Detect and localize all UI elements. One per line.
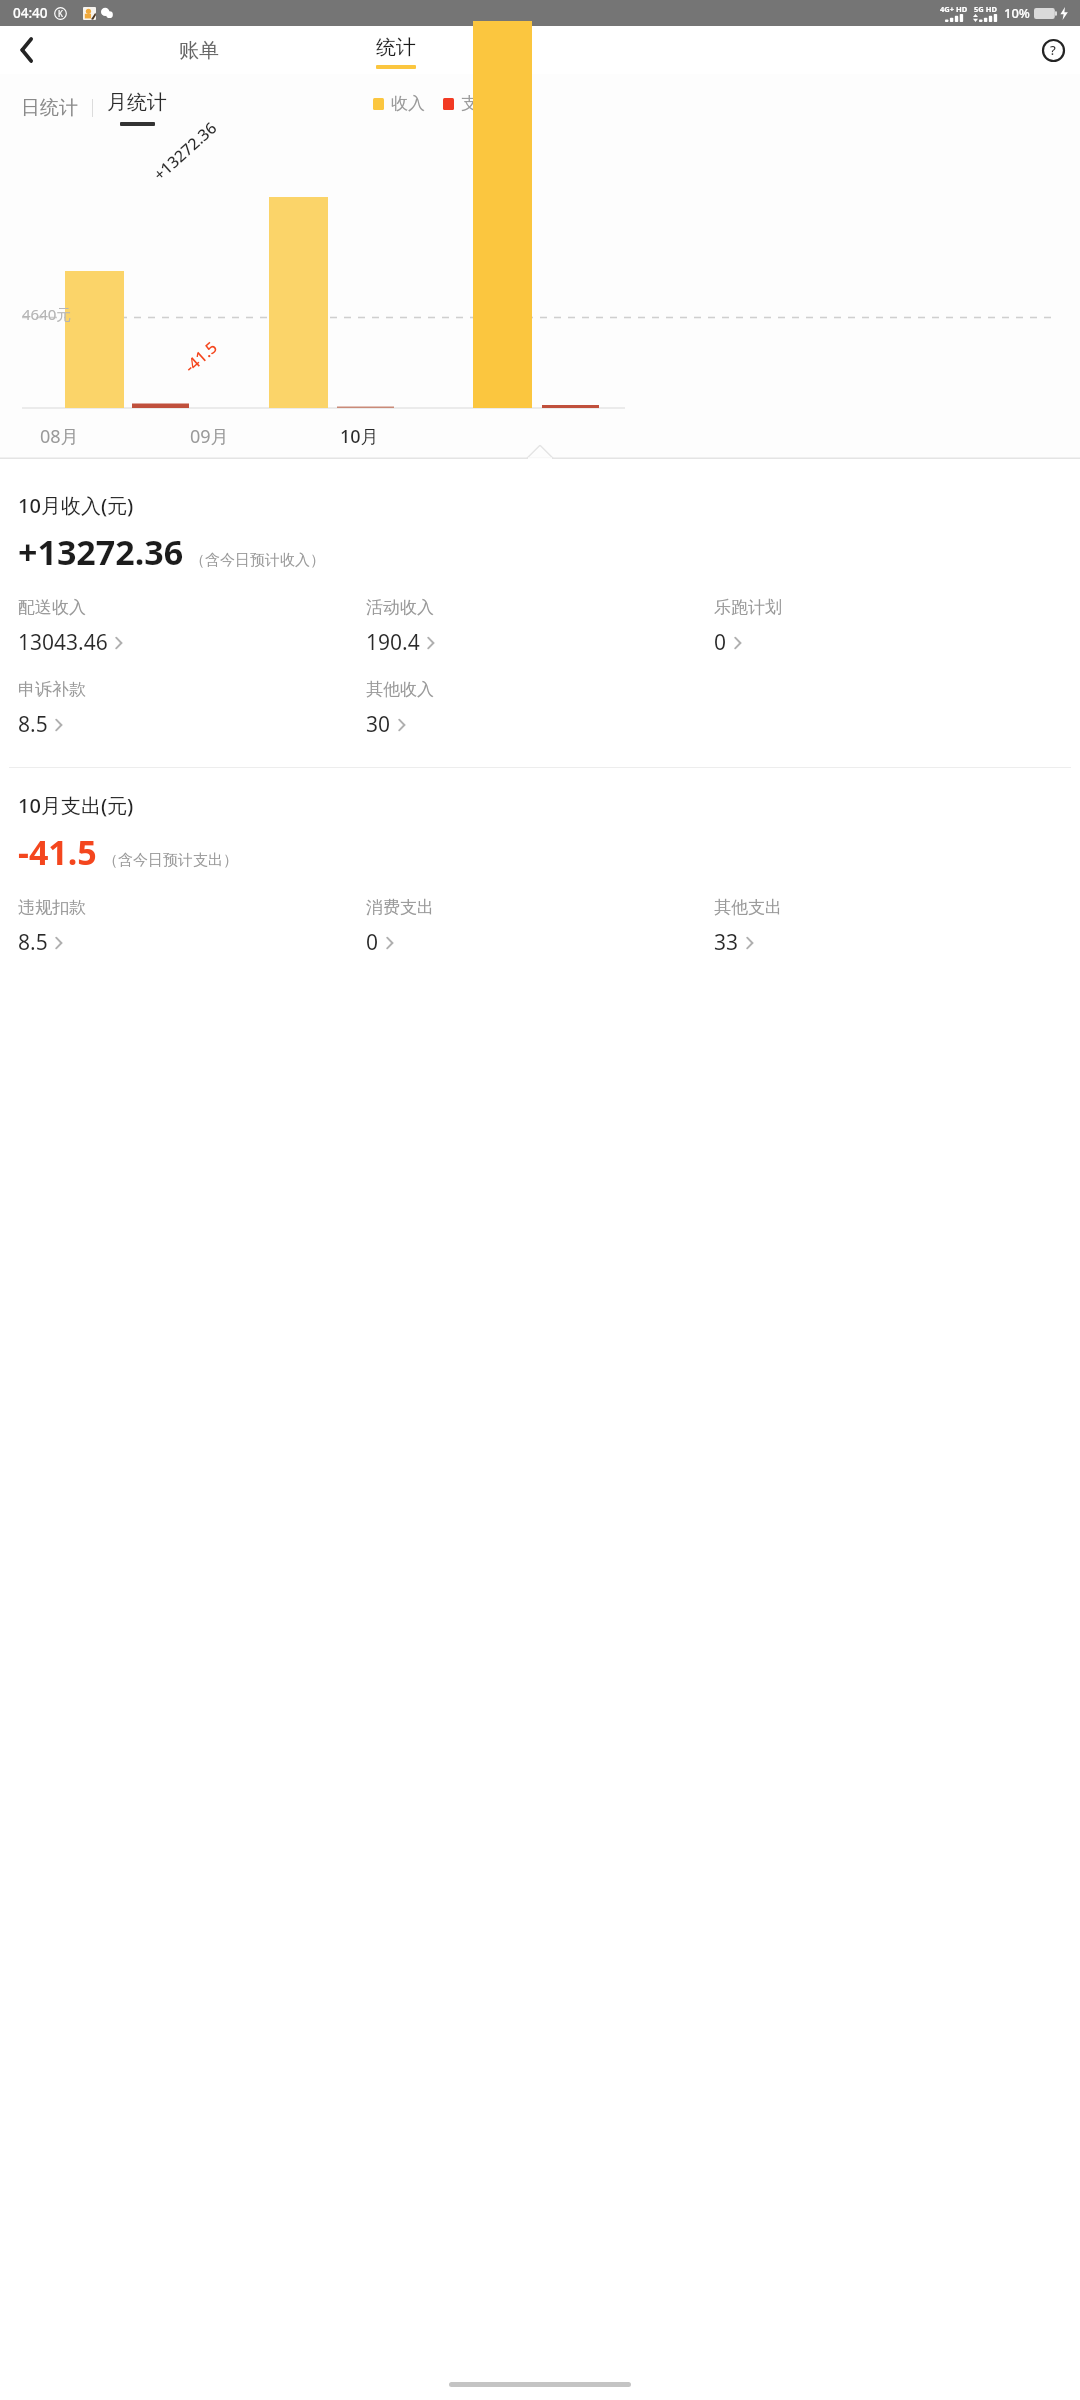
staticText: 月统计 [107, 90, 167, 115]
staticText: 其他支出 [714, 897, 782, 918]
button[interactable]: 其他收入 [366, 679, 434, 739]
staticText: 8.5 [18, 928, 48, 957]
button[interactable]: 09月 [186, 420, 233, 453]
button[interactable]: 消费支出 [366, 897, 434, 957]
staticText: 账单 [179, 38, 219, 63]
button[interactable]: 08月 [36, 420, 83, 453]
staticText: 违规扣款 [18, 897, 86, 918]
button[interactable]: 活动收入 [366, 597, 435, 657]
button[interactable]: 日统计 [18, 90, 81, 126]
staticText: 支出 [461, 93, 495, 114]
staticText: +13272.36 [18, 529, 184, 575]
staticText: 10% [1004, 4, 1030, 22]
staticText: -41.5 [179, 336, 222, 377]
staticText: 申诉补款 [18, 679, 86, 700]
staticText: 33 [714, 928, 739, 957]
button[interactable]: 申诉补款 [18, 679, 86, 739]
staticText: ? [1050, 41, 1056, 59]
staticText: （含今日预计支出） [103, 851, 238, 870]
staticText: 乐跑计划 [714, 597, 782, 618]
staticText: 活动收入 [366, 597, 434, 618]
staticText: 30 [366, 710, 391, 739]
staticText: 10月 [340, 424, 379, 449]
button[interactable]: 违规扣款 [18, 897, 86, 957]
button[interactable]: 月统计 [104, 90, 170, 126]
staticText: 09月 [190, 424, 229, 449]
staticText: 8.5 [18, 710, 48, 739]
staticText: 其他收入 [366, 679, 434, 700]
staticText: 0 [366, 928, 379, 957]
staticText: 10月支出(元) [18, 792, 134, 819]
button[interactable]: 乐跑计划 [714, 597, 782, 657]
staticText: 统计 [376, 35, 416, 60]
staticText: 消费支出 [366, 897, 434, 918]
button[interactable]: 10月 [336, 420, 383, 453]
staticText: 0 [714, 628, 727, 657]
staticText: 5G HD [974, 4, 997, 14]
button[interactable]: 统计 [343, 26, 449, 74]
staticText: 10月收入(元) [18, 492, 134, 519]
staticText: 08月 [40, 424, 79, 449]
staticText: +13272.36 [149, 117, 221, 185]
staticText: K [58, 8, 63, 19]
staticText: 04:40 [13, 4, 48, 22]
staticText: 日统计 [21, 96, 78, 120]
button[interactable]: 账单 [146, 26, 252, 74]
button[interactable]: 配送收入 [18, 597, 123, 657]
staticText: -41.5 [18, 829, 97, 875]
button[interactable]: 其他支出 [714, 897, 782, 957]
staticText: 配送收入 [18, 597, 86, 618]
staticText: 4640元 [22, 304, 72, 324]
staticText: 收入 [391, 93, 425, 114]
button[interactable]: Help [1026, 26, 1080, 74]
staticText: 190.4 [366, 628, 420, 657]
staticText: （含今日预计收入） [190, 551, 325, 570]
staticText: 4G+ HD [940, 4, 968, 14]
staticText: 13043.46 [18, 628, 108, 657]
button[interactable]: Back [0, 26, 54, 74]
